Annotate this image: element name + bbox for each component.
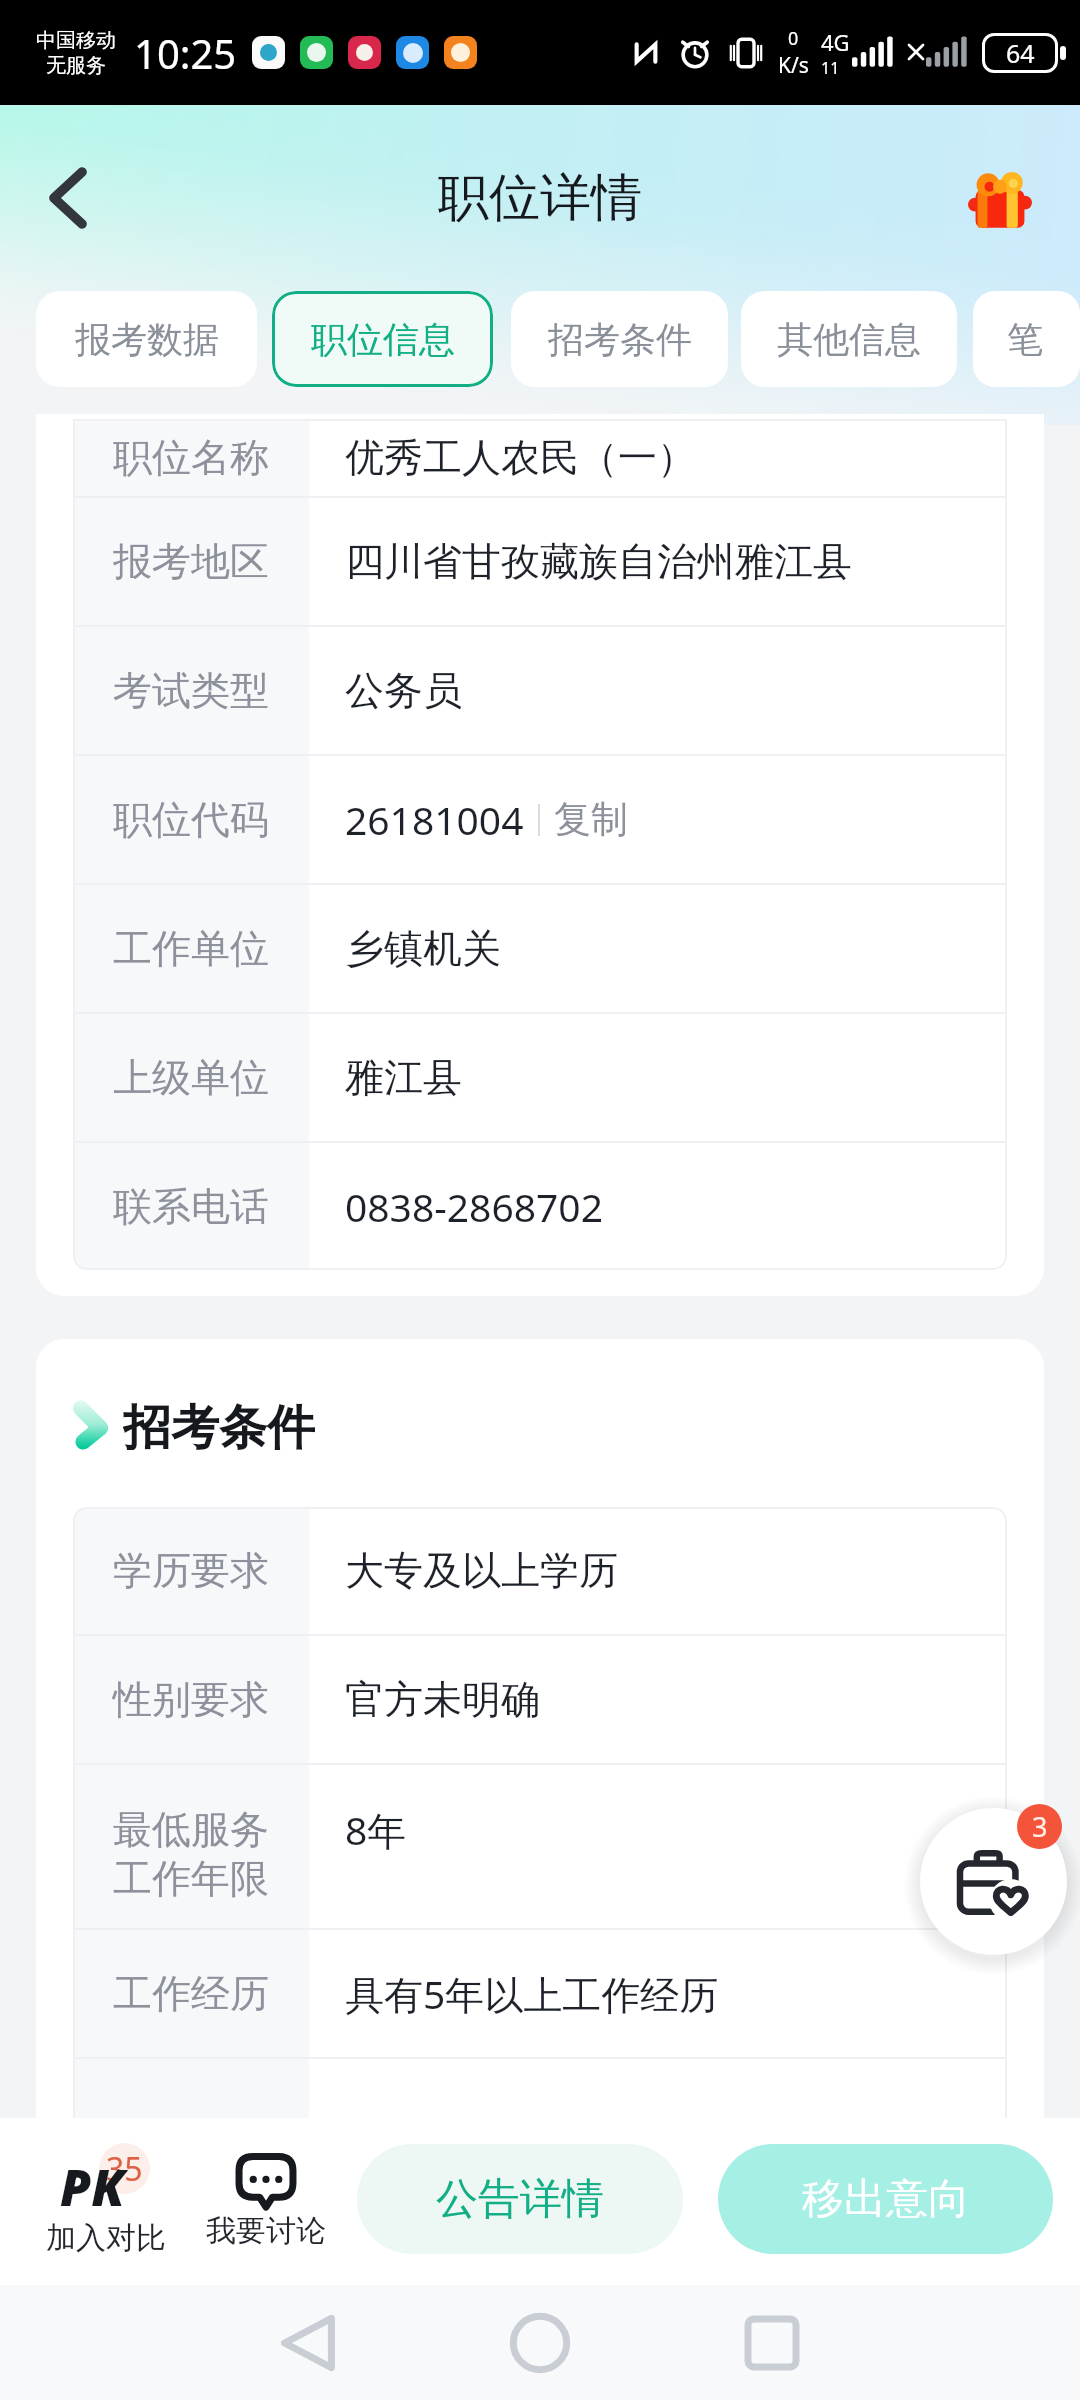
button[interactable]: Recents xyxy=(724,2295,820,2391)
button[interactable]: 其他信息 xyxy=(741,291,957,387)
staticText: 4G xyxy=(821,27,850,57)
staticText: 联系电话 xyxy=(113,1182,269,1231)
button[interactable]: Back xyxy=(260,2295,356,2391)
staticText: 0838-2868702 xyxy=(345,1180,603,1233)
staticText: 10:25 xyxy=(134,26,237,80)
staticText: 职位代码 xyxy=(113,795,269,844)
staticText: 报考数据 xyxy=(75,317,219,362)
staticText: 0 xyxy=(788,26,799,51)
staticText: 工作年限 xyxy=(113,1854,269,1903)
button[interactable]: Gift xyxy=(960,158,1040,238)
staticText: 优秀工人农民（一） xyxy=(345,433,696,482)
staticText: 8年 xyxy=(345,1803,407,1856)
staticText: 工作经历 xyxy=(113,1969,269,2018)
staticText: 无服务 xyxy=(46,53,106,78)
staticText: 其他信息 xyxy=(777,317,921,362)
staticText: 考试类型 xyxy=(113,666,269,715)
staticText: 3 xyxy=(1032,1808,1048,1845)
staticText: 上级单位 xyxy=(113,1053,269,1102)
staticText: 具有5年以上工作经历 xyxy=(345,1967,719,2020)
button[interactable]: Home xyxy=(492,2295,588,2391)
staticText: 笔 xyxy=(1007,317,1043,362)
staticText: 工作单位 xyxy=(113,924,269,973)
staticText: 移出意向 xyxy=(802,2173,970,2226)
button[interactable]: 我要讨论 xyxy=(198,2118,334,2285)
button[interactable]: 35 xyxy=(38,2118,174,2285)
staticText: 职位详情 xyxy=(438,166,642,230)
button[interactable]: 移出意向 xyxy=(718,2144,1053,2254)
button[interactable]: 招考条件 xyxy=(511,291,728,387)
staticText: 26181004 xyxy=(345,793,524,846)
button[interactable]: 职位信息 xyxy=(272,291,493,387)
button[interactable]: Saved jobs xyxy=(920,1808,1067,1955)
staticText: 最低服务 xyxy=(113,1805,269,1854)
button[interactable]: 复制 xyxy=(554,796,628,843)
staticText: 报考地区 xyxy=(113,537,269,586)
staticText: 官方未明确 xyxy=(345,1675,540,1724)
staticText: 11 xyxy=(821,57,840,79)
staticText: 学历要求 xyxy=(113,1546,269,1595)
staticText: 中国移动 xyxy=(36,28,116,53)
staticText: 乡镇机关 xyxy=(345,924,501,973)
staticText: 招考条件 xyxy=(548,317,692,362)
staticText: 35 xyxy=(106,2147,143,2191)
staticText: 性别要求 xyxy=(113,1675,269,1724)
staticText: 加入对比 xyxy=(46,2219,166,2257)
button[interactable]: 报考数据 xyxy=(36,291,257,387)
staticText: 雅江县 xyxy=(345,1053,462,1102)
button[interactable]: Back xyxy=(24,154,112,242)
staticText: 公告详情 xyxy=(436,2173,604,2226)
button[interactable]: 笔 xyxy=(973,291,1080,387)
staticText: 公务员 xyxy=(345,666,462,715)
staticText: 大专及以上学历 xyxy=(345,1546,618,1595)
staticText: 招考条件 xyxy=(123,1398,315,1450)
staticText: 四川省甘孜藏族自治州雅江县 xyxy=(345,537,852,586)
staticText: K/s xyxy=(778,51,809,80)
staticText: PK xyxy=(60,2153,125,2221)
staticText: 我要讨论 xyxy=(206,2212,326,2250)
button[interactable]: 公告详情 xyxy=(357,2144,683,2254)
staticText: 64 xyxy=(1006,36,1035,70)
staticText: 职位名称 xyxy=(113,433,269,482)
staticText: 职位信息 xyxy=(311,317,455,362)
